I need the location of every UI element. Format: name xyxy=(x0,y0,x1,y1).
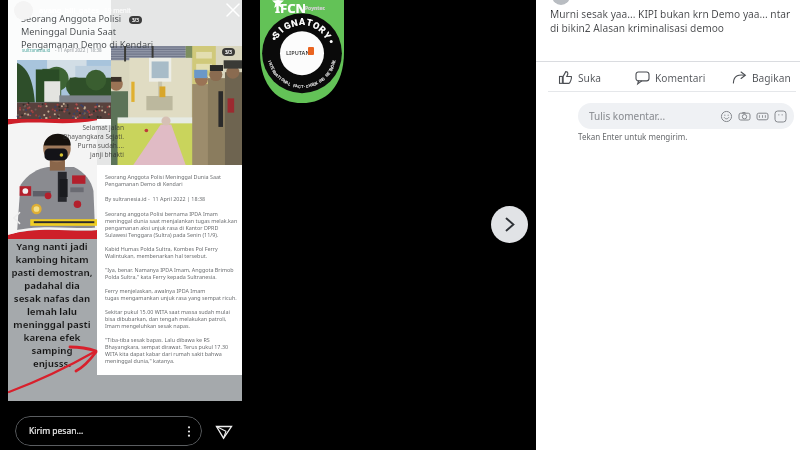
button[interactable]: sticker xyxy=(774,110,787,123)
staticText: Tekan Enter untuk mengirim. xyxy=(578,131,688,142)
staticText: By sultranesia.id - 11 April 2022 | 18:3… xyxy=(105,195,206,202)
staticText: Yang nanti jadi kambing hitam pasti demo… xyxy=(11,240,93,370)
staticText: sultranesia.id xyxy=(22,47,51,53)
staticText: WITA kita dapat kabar dari rumah sakit b… xyxy=(105,350,222,357)
button[interactable]: camera xyxy=(738,110,751,123)
staticText: Suka xyxy=(578,71,602,85)
staticText: Bagikan xyxy=(752,71,791,85)
staticText: meninggal dunia saat menjalankan tugas m… xyxy=(105,217,238,224)
staticText: tugas mengamankan unjuk rasa yang sempat… xyxy=(105,294,237,301)
button[interactable]: Next xyxy=(491,206,528,243)
staticText: Seorang Anggota Polisi xyxy=(21,12,122,25)
staticText: Poynter. xyxy=(305,5,326,12)
staticText: Komentari xyxy=(655,71,706,85)
staticText: 19 menit xyxy=(104,6,131,15)
button[interactable]: gif xyxy=(756,110,769,123)
staticText: Ferry menjelaskan, awalnya IPDA Imam men… xyxy=(105,287,238,294)
button[interactable]: emoji xyxy=(720,110,733,123)
staticText: meninggal dunia," katanya. xyxy=(105,357,175,364)
staticText: pengamanan aksi unjuk rasa di Kantor DPR… xyxy=(105,224,219,231)
staticText: Seorang anggota Polisi bernama IPDA Imam xyxy=(105,210,218,217)
staticText: Pengamanan Demo di Kendari xyxy=(105,180,183,187)
button[interactable]: Close xyxy=(225,2,241,18)
staticText: "Iya, benar. Namanya IPDA Imam, Anggota … xyxy=(105,266,234,273)
button[interactable]: Komentari xyxy=(630,65,711,90)
staticText: 3/3 xyxy=(225,49,232,55)
staticText: Seorang Anggota Polisi Meninggal Dunia S… xyxy=(105,173,221,180)
staticText: IFCN xyxy=(275,0,307,17)
staticText: Pengamanan Demo di Kendari xyxy=(21,38,154,51)
staticText: Murni sesak yaa... KIPI bukan krn Demo y… xyxy=(550,7,791,35)
staticText: Tulis komentar... xyxy=(589,109,666,123)
staticText: Polda Sultra," kata Ferry kepada Sultran… xyxy=(105,273,217,280)
staticText: bisa dibubarkan, dan tengah melakukan pa… xyxy=(105,315,238,322)
button[interactable]: Tulis komentar... xyxy=(578,103,794,129)
staticText: - 11 April 2022 | 18:38 xyxy=(55,47,102,53)
staticText: Imam mengeluhkan sesak napas. xyxy=(105,322,191,329)
staticText: Meninggal Dunia Saat xyxy=(21,25,117,38)
staticText: Walintukan, membenarkan hal tersebut. xyxy=(105,252,208,259)
button[interactable]: Suka xyxy=(554,65,606,90)
staticText: Sulawesi Tenggara (Sultra) pada Senin (1… xyxy=(105,231,219,238)
staticText: Selamat jalan Bhayangkara Sejati. Purna … xyxy=(62,123,124,159)
staticText: "Tiba-tiba sesak bapas. Lalu dibawa ke R… xyxy=(105,336,210,343)
staticText: Sekitar pukul 15.00 WITA saat massa suda… xyxy=(105,308,230,315)
button[interactable]: Send message xyxy=(213,420,235,442)
button[interactable]: Bagikan xyxy=(727,65,796,90)
button[interactable]: Profile photo xyxy=(552,0,570,5)
button[interactable]: Profile xyxy=(14,1,33,20)
staticText: Kabid Humas Polda Sultra, Kombes Pol Fer… xyxy=(105,245,218,252)
staticText: 3/3 xyxy=(132,17,139,23)
staticText: Bhayangkara, sempat dirawat. Terus pukul… xyxy=(105,343,229,350)
staticText: Kirim pesan... xyxy=(29,425,84,437)
button[interactable]: Kirim pesan... xyxy=(15,416,202,446)
staticText: LIPUTAN xyxy=(286,49,310,56)
